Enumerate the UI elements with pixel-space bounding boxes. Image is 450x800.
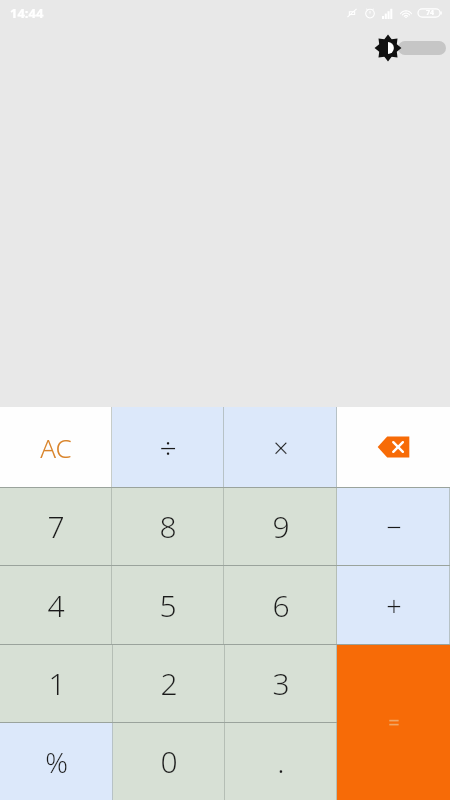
staticText: 74: [426, 8, 435, 18]
staticText: +: [386, 587, 402, 624]
button[interactable]: ÷: [112, 407, 224, 487]
button[interactable]: 9: [224, 488, 337, 565]
staticText: %: [45, 743, 68, 781]
staticText: 3: [272, 663, 290, 704]
button[interactable]: 1: [0, 645, 113, 722]
staticText: 2: [160, 663, 178, 704]
button[interactable]: −: [337, 488, 450, 565]
button[interactable]: Brightness toggle: [388, 41, 436, 55]
button[interactable]: 5: [112, 566, 224, 644]
staticText: 7: [47, 506, 65, 547]
button[interactable]: AC: [0, 407, 112, 487]
staticText: 8: [159, 506, 177, 547]
button[interactable]: .: [225, 723, 337, 800]
staticText: 1: [48, 663, 66, 704]
button[interactable]: 3: [225, 645, 337, 722]
staticText: .: [277, 741, 285, 782]
staticText: 6: [272, 585, 290, 626]
staticText: 4: [47, 585, 65, 626]
staticText: −: [386, 508, 402, 545]
staticText: 5: [159, 585, 177, 626]
button[interactable]: =: [337, 645, 450, 800]
button[interactable]: 6: [224, 566, 337, 644]
staticText: ×: [273, 429, 289, 466]
button[interactable]: +: [337, 566, 450, 644]
button[interactable]: ×: [224, 407, 337, 487]
staticText: 0: [160, 741, 178, 782]
staticText: ÷: [159, 427, 177, 468]
staticText: AC: [40, 430, 72, 465]
button[interactable]: 0: [113, 723, 225, 800]
button[interactable]: 8: [112, 488, 224, 565]
staticText: =: [388, 709, 400, 736]
staticText: 9: [272, 506, 290, 547]
button[interactable]: 2: [113, 645, 225, 722]
button[interactable]: 7: [0, 488, 112, 565]
button[interactable]: Backspace: [337, 407, 450, 487]
staticText: 14:44: [10, 4, 44, 22]
button[interactable]: 4: [0, 566, 112, 644]
button[interactable]: %: [0, 723, 113, 800]
